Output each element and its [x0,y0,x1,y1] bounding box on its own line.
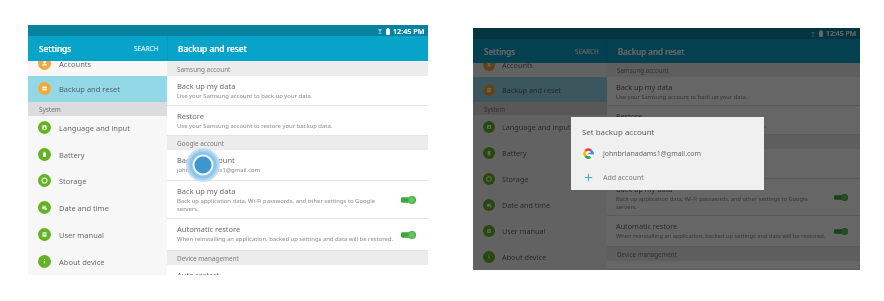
button[interactable]: Search [573,45,601,58]
staticText: System [39,105,61,114]
staticText: Storage [59,176,87,186]
button[interactable]: Toggle [401,196,416,204]
staticText: Back up account [177,155,235,165]
button[interactable]: Back up my data [167,181,428,219]
staticText: Use your Samsung account to back up your… [177,92,313,100]
staticText: Device management [177,254,239,263]
staticText: Storage [502,174,529,184]
button[interactable]: User manual [28,221,167,248]
staticText: Restore [177,111,204,121]
button[interactable]: Toggle [834,194,848,201]
staticText: Use your Samsung account to back up your… [616,93,748,101]
button[interactable]: About device [28,248,167,275]
staticText: Auto restart [616,266,657,270]
staticText: 12:45 PM [826,29,857,38]
staticText: Accounts [502,63,534,70]
staticText: Back up my data [616,184,673,194]
button[interactable]: Restore [607,106,860,135]
staticText: Language and input [502,122,571,132]
button[interactable]: Toggle [834,228,848,235]
staticText: User manual [59,230,104,240]
staticText: Date and time [502,200,551,210]
staticText: About device [502,252,546,262]
staticText: Back up my data [177,81,236,91]
staticText: Settings [484,46,516,57]
button[interactable]: Auto restart [607,261,860,270]
staticText: johnbrianadams1@gmail.com [603,149,702,158]
button[interactable]: Back up my data [167,76,428,106]
button[interactable]: Date and time [473,192,607,218]
staticText: Set backup account [582,127,655,138]
staticText: When reinstalling an application, backed… [616,232,826,240]
button[interactable]: Back up my data [607,77,860,106]
staticText: Back up my data [177,186,236,196]
staticText: Use your Samsung account to restore your… [177,122,333,130]
staticText: Automatic restore [616,221,678,231]
staticText: Add account [603,173,644,182]
staticText: servers. [616,203,638,211]
staticText: Back up application data, Wi-Fi password… [616,195,808,203]
staticText: Automatic restore [177,224,241,234]
staticText: Date and time [59,203,109,213]
button[interactable]: Auto restart [167,265,428,275]
button[interactable]: Add account [571,166,764,189]
staticText: servers. [177,205,199,213]
button[interactable]: johnbrianadams1@gmail.com [571,142,764,165]
staticText: Battery [59,150,85,160]
button[interactable]: Date and time [28,194,167,221]
button[interactable]: Back up my data [607,179,860,216]
staticText: Accounts [59,61,92,69]
staticText: Settings [39,43,72,54]
button[interactable]: Storage [473,166,607,192]
staticText: About device [59,257,105,267]
button[interactable]: Restore [167,106,428,136]
button[interactable]: Storage [28,167,167,194]
staticText: Samsung account [177,65,231,74]
staticText: Backup and reset [178,43,247,54]
staticText: Back up application data, Wi-Fi password… [177,197,375,205]
staticText: Device management [617,250,677,258]
button[interactable]: Language and input [473,114,607,140]
button[interactable]: Toggle [401,231,416,239]
button[interactable]: Accounts [28,61,167,77]
staticText: johnbrianadams1@gmail.com [177,166,261,174]
staticText: Back up account [616,154,672,164]
staticText: Samsung account [617,66,669,74]
button[interactable]: Language and input [28,114,167,141]
button[interactable]: Automatic restore [607,216,860,247]
staticText: Auto restart [177,270,220,275]
staticText: Google account [177,139,225,148]
staticText: Battery [502,148,527,158]
staticText: Restore [616,111,643,121]
button[interactable]: Backup and reset [28,75,167,102]
button[interactable]: Back up account [607,149,860,179]
button[interactable]: Battery [473,140,607,166]
staticText: 12:45 PM [393,26,425,36]
staticText: Language and input [59,123,130,133]
button[interactable]: About device [473,244,607,270]
button[interactable]: Accounts [473,63,607,78]
button[interactable]: Back up account [167,150,428,181]
staticText: Backup and reset [618,46,685,57]
button[interactable]: User manual [473,218,607,244]
staticText: Back up my data [616,82,673,92]
button[interactable]: Automatic restore [167,219,428,251]
staticText: When reinstalling an application, backed… [177,235,394,243]
staticText: Use your Samsung account to restore your… [616,122,767,130]
staticText: SEARCH [134,44,159,53]
staticText: Backup and reset [502,85,561,95]
button[interactable]: Search [132,42,161,55]
button[interactable]: Backup and reset [473,77,607,103]
staticText: Backup and reset [59,84,120,94]
staticText: User manual [502,226,546,236]
staticText: SEARCH [575,47,599,56]
staticText: System [484,105,506,113]
button[interactable]: Battery [28,141,167,168]
